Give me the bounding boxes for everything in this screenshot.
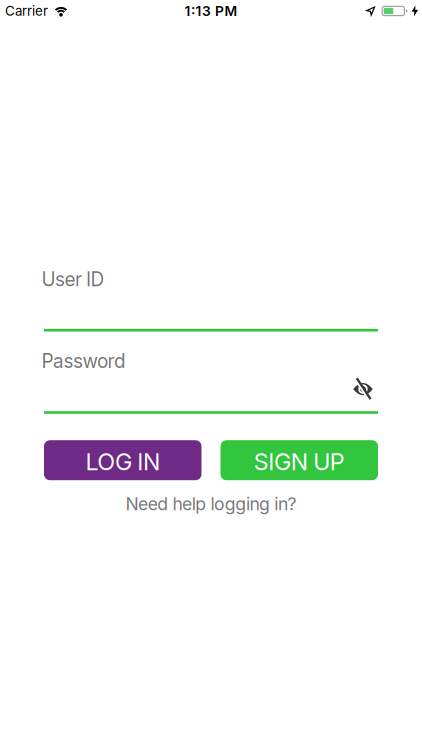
staticText: LOG IN xyxy=(85,448,160,476)
staticText: SIGN UP xyxy=(254,448,345,476)
button[interactable]: SIGN UP xyxy=(220,440,378,480)
staticText: Password xyxy=(41,350,126,373)
staticText: User ID xyxy=(41,268,104,291)
staticText: Carrier xyxy=(5,3,48,19)
staticText: 1:13 PM xyxy=(184,3,237,19)
button[interactable]: Need help logging in? xyxy=(125,493,296,514)
button[interactable]: LOG IN xyxy=(44,440,201,480)
staticText: Need help logging in? xyxy=(125,493,296,514)
button[interactable]: Show password xyxy=(352,377,374,401)
